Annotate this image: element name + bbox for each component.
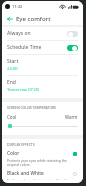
staticText: Always on [7,30,67,37]
staticText: 22:00 [7,66,18,72]
staticText: End [7,79,16,86]
staticText: 11:32 [12,4,23,9]
button[interactable]: Black and White [7,170,78,180]
button[interactable]: Screen color temperature [7,123,78,129]
staticText: Eye comfort [16,15,51,23]
button[interactable]: Schedule Time [7,41,78,54]
button[interactable]: End [7,76,78,96]
button[interactable]: Always on [7,27,78,40]
staticText: Start [7,58,19,65]
staticText: Protects your eyes while retaining the o… [7,158,69,167]
staticText: SCREEN COLOR TEMPERATURE [7,105,57,110]
button[interactable]: Back [5,14,14,23]
staticText: Black and White [7,170,44,177]
staticText: Color [7,150,20,157]
button[interactable]: Color [7,150,78,167]
button[interactable]: Start [7,55,78,75]
staticText: Schedule Time [7,44,67,51]
staticText: DISPLAY EFFECTS [7,142,35,147]
staticText: Tomorrow 07:00 [7,87,39,93]
staticText: Cool [7,114,17,120]
staticText: Further reduces the intensity of bright … [7,178,69,180]
staticText: Warm [65,114,78,120]
